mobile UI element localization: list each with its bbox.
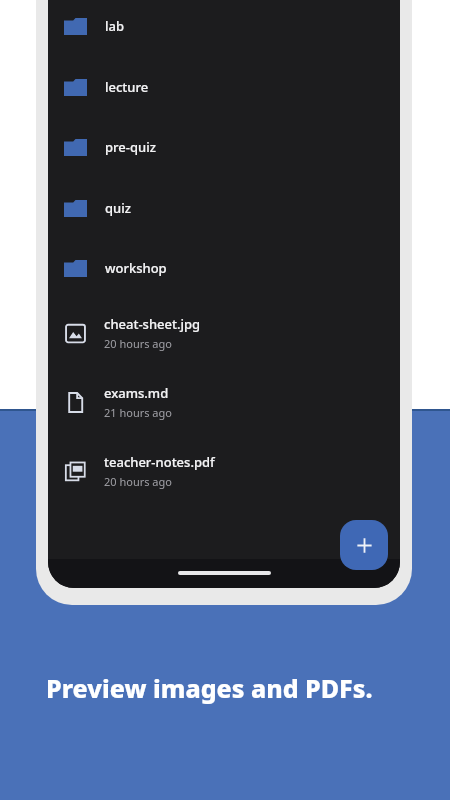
staticText: workshop: [105, 259, 167, 277]
staticText: 21 hours ago: [104, 405, 172, 420]
staticText: Preview images and PDFs.: [46, 671, 373, 705]
button[interactable]: lab: [48, 0, 400, 56]
button[interactable]: pre-quiz: [48, 117, 400, 177]
staticText: lab: [105, 17, 125, 35]
button[interactable]: teacher-notes.pdf: [48, 437, 400, 505]
staticText: quiz: [105, 199, 131, 217]
staticText: cheat-sheet.jpg: [104, 315, 201, 333]
staticText: 20 hours ago: [104, 336, 172, 351]
button[interactable]: Add new item: [340, 520, 388, 570]
button[interactable]: quiz: [48, 178, 400, 238]
button[interactable]: cheat-sheet.jpg: [48, 299, 400, 367]
button[interactable]: workshop: [48, 238, 400, 298]
staticText: 20 hours ago: [104, 474, 172, 489]
button[interactable]: lecture: [48, 57, 400, 117]
staticText: teacher-notes.pdf: [104, 453, 215, 471]
staticText: pre-quiz: [105, 138, 156, 156]
staticText: exams.md: [104, 384, 169, 402]
button[interactable]: exams.md: [48, 368, 400, 436]
staticText: lecture: [105, 78, 149, 96]
